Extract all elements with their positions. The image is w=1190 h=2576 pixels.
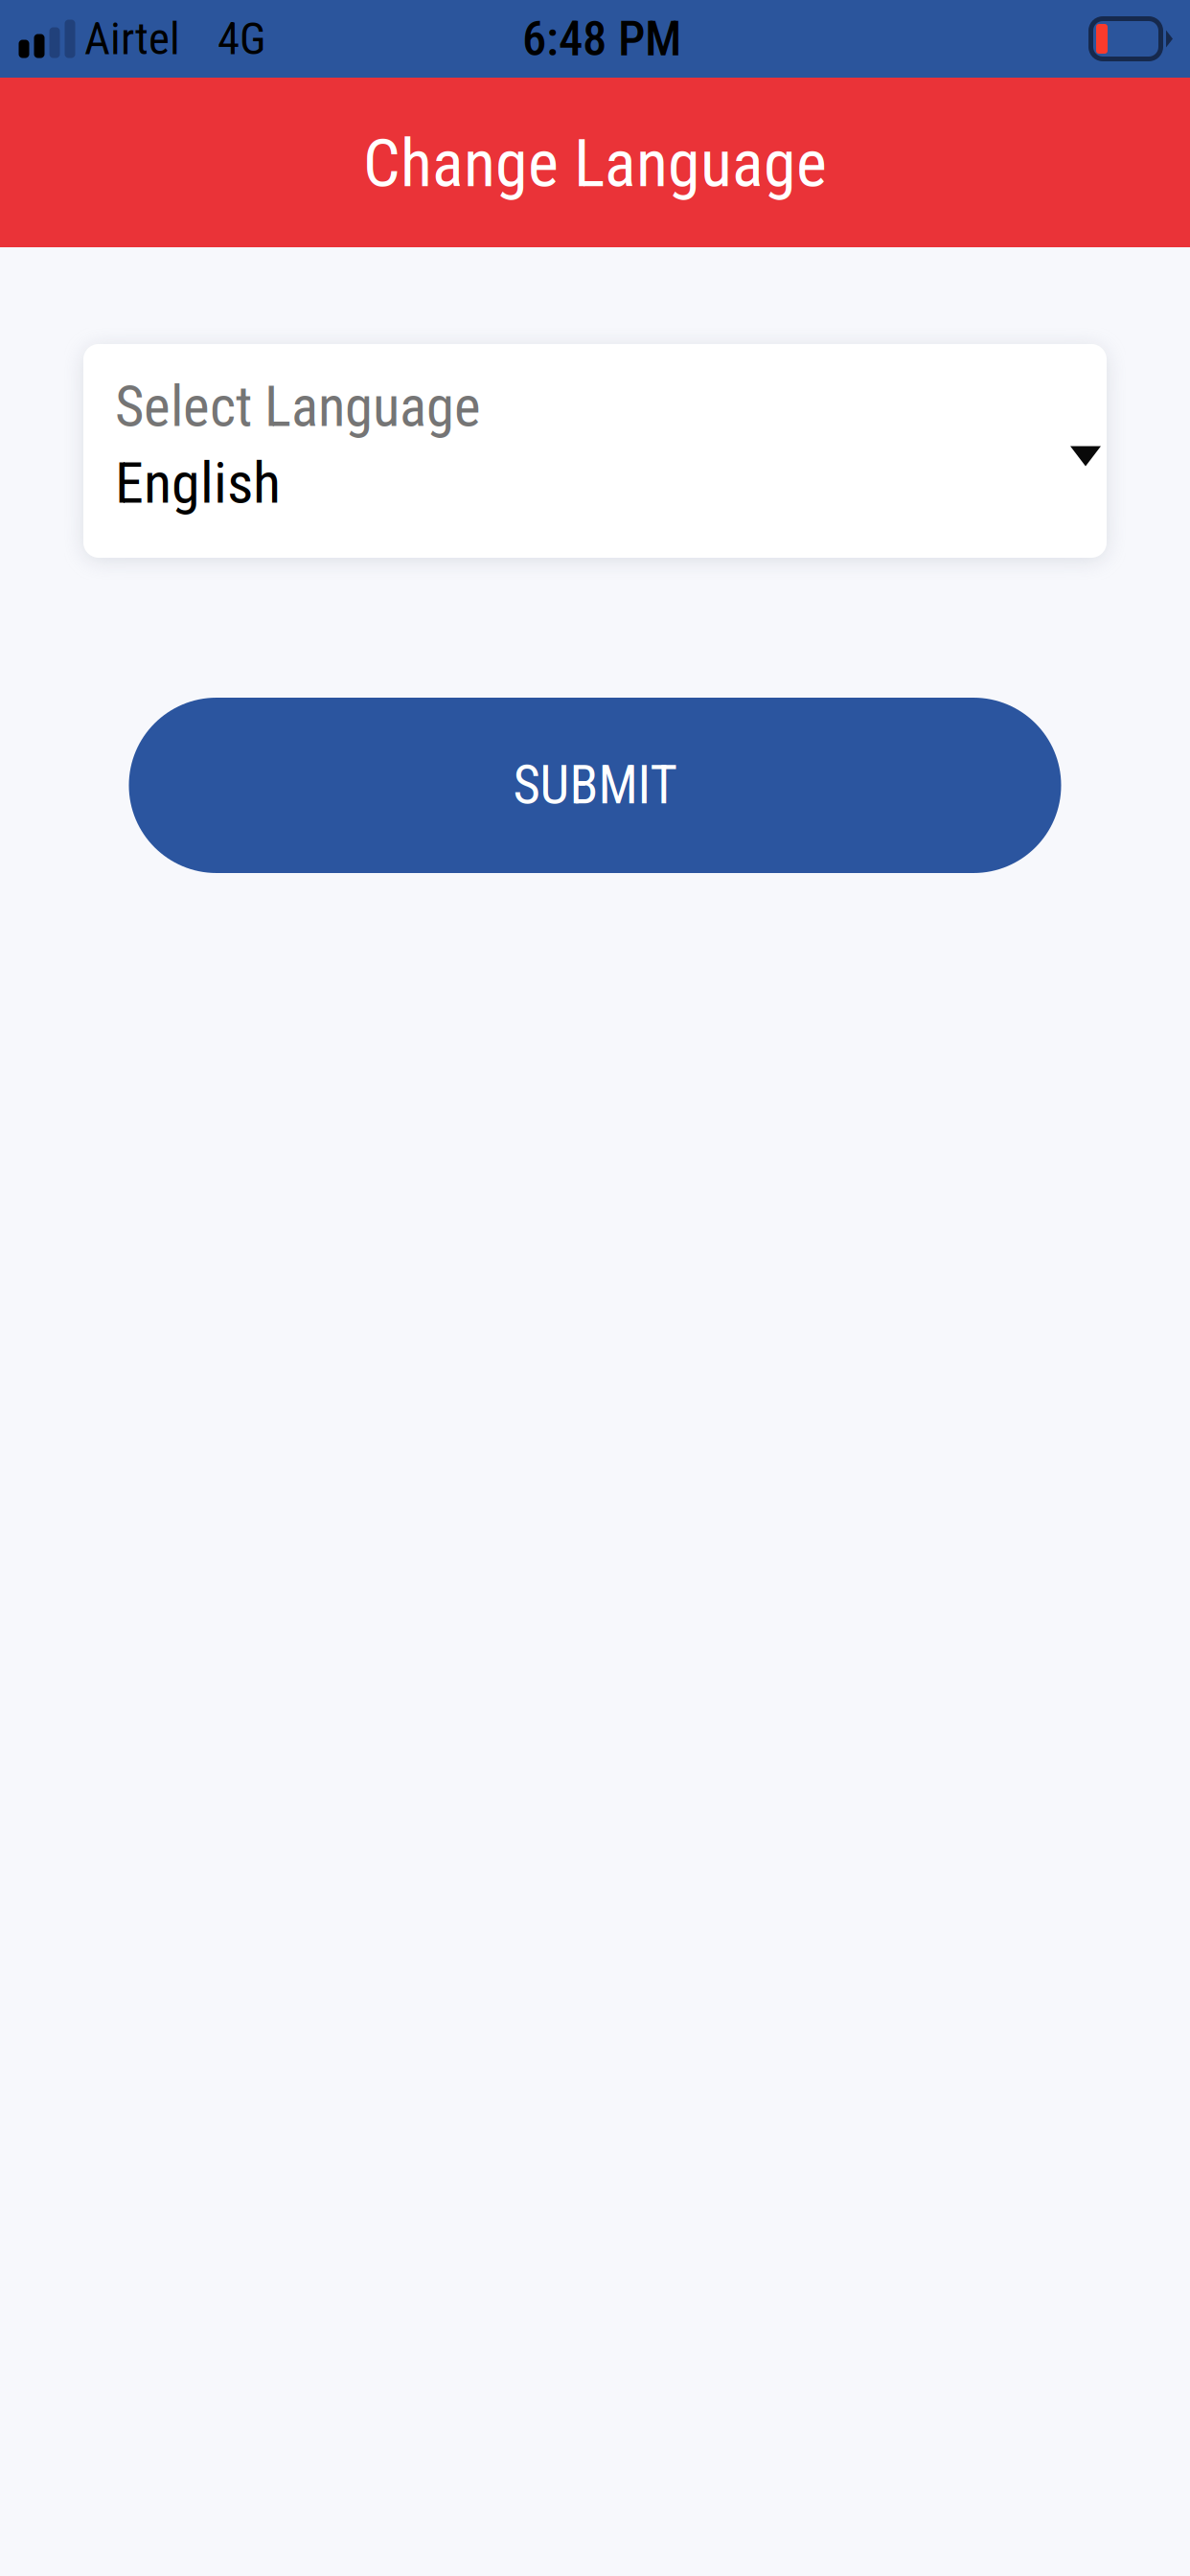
staticText: Change Language [363, 126, 827, 202]
button[interactable]: SUBMIT [129, 698, 1061, 873]
staticText: 4G [217, 13, 266, 65]
staticText: 6:48 PM [522, 10, 681, 67]
staticText: English [115, 449, 281, 517]
staticText: Airtel [84, 13, 180, 65]
staticText: SUBMIT [513, 755, 677, 816]
staticText: Select Language [115, 374, 481, 440]
button[interactable]: Select Language, English [83, 344, 1107, 558]
